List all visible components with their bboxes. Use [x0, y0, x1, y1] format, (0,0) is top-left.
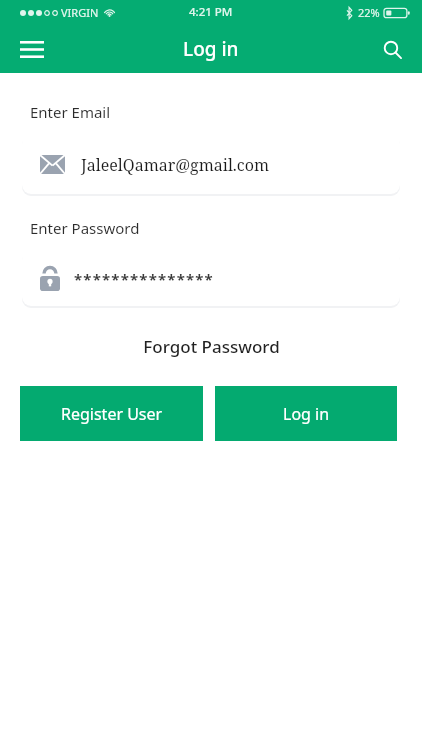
- button[interactable]: Forgot Password: [131, 331, 292, 362]
- button[interactable]: Search: [370, 27, 414, 71]
- button[interactable]: Open navigation menu: [10, 27, 54, 71]
- button[interactable]: JaleelQamar@gmail.com: [22, 135, 400, 194]
- button[interactable]: Log in: [215, 386, 397, 441]
- button[interactable]: ***************: [22, 251, 400, 306]
- staticText: ***************: [74, 269, 214, 289]
- staticText: Enter Password: [30, 218, 140, 238]
- staticText: VIRGIN: [61, 5, 99, 20]
- staticText: 4:21 PM: [189, 4, 233, 20]
- staticText: Enter Email: [30, 102, 111, 122]
- staticText: JaleelQamar@gmail.com: [81, 154, 270, 176]
- staticText: Log in: [283, 403, 330, 425]
- staticText: Forgot Password: [143, 335, 280, 358]
- staticText: 22%: [358, 5, 380, 20]
- button[interactable]: Register User: [20, 386, 203, 441]
- staticText: Register User: [61, 403, 163, 425]
- staticText: Log in: [183, 36, 239, 62]
